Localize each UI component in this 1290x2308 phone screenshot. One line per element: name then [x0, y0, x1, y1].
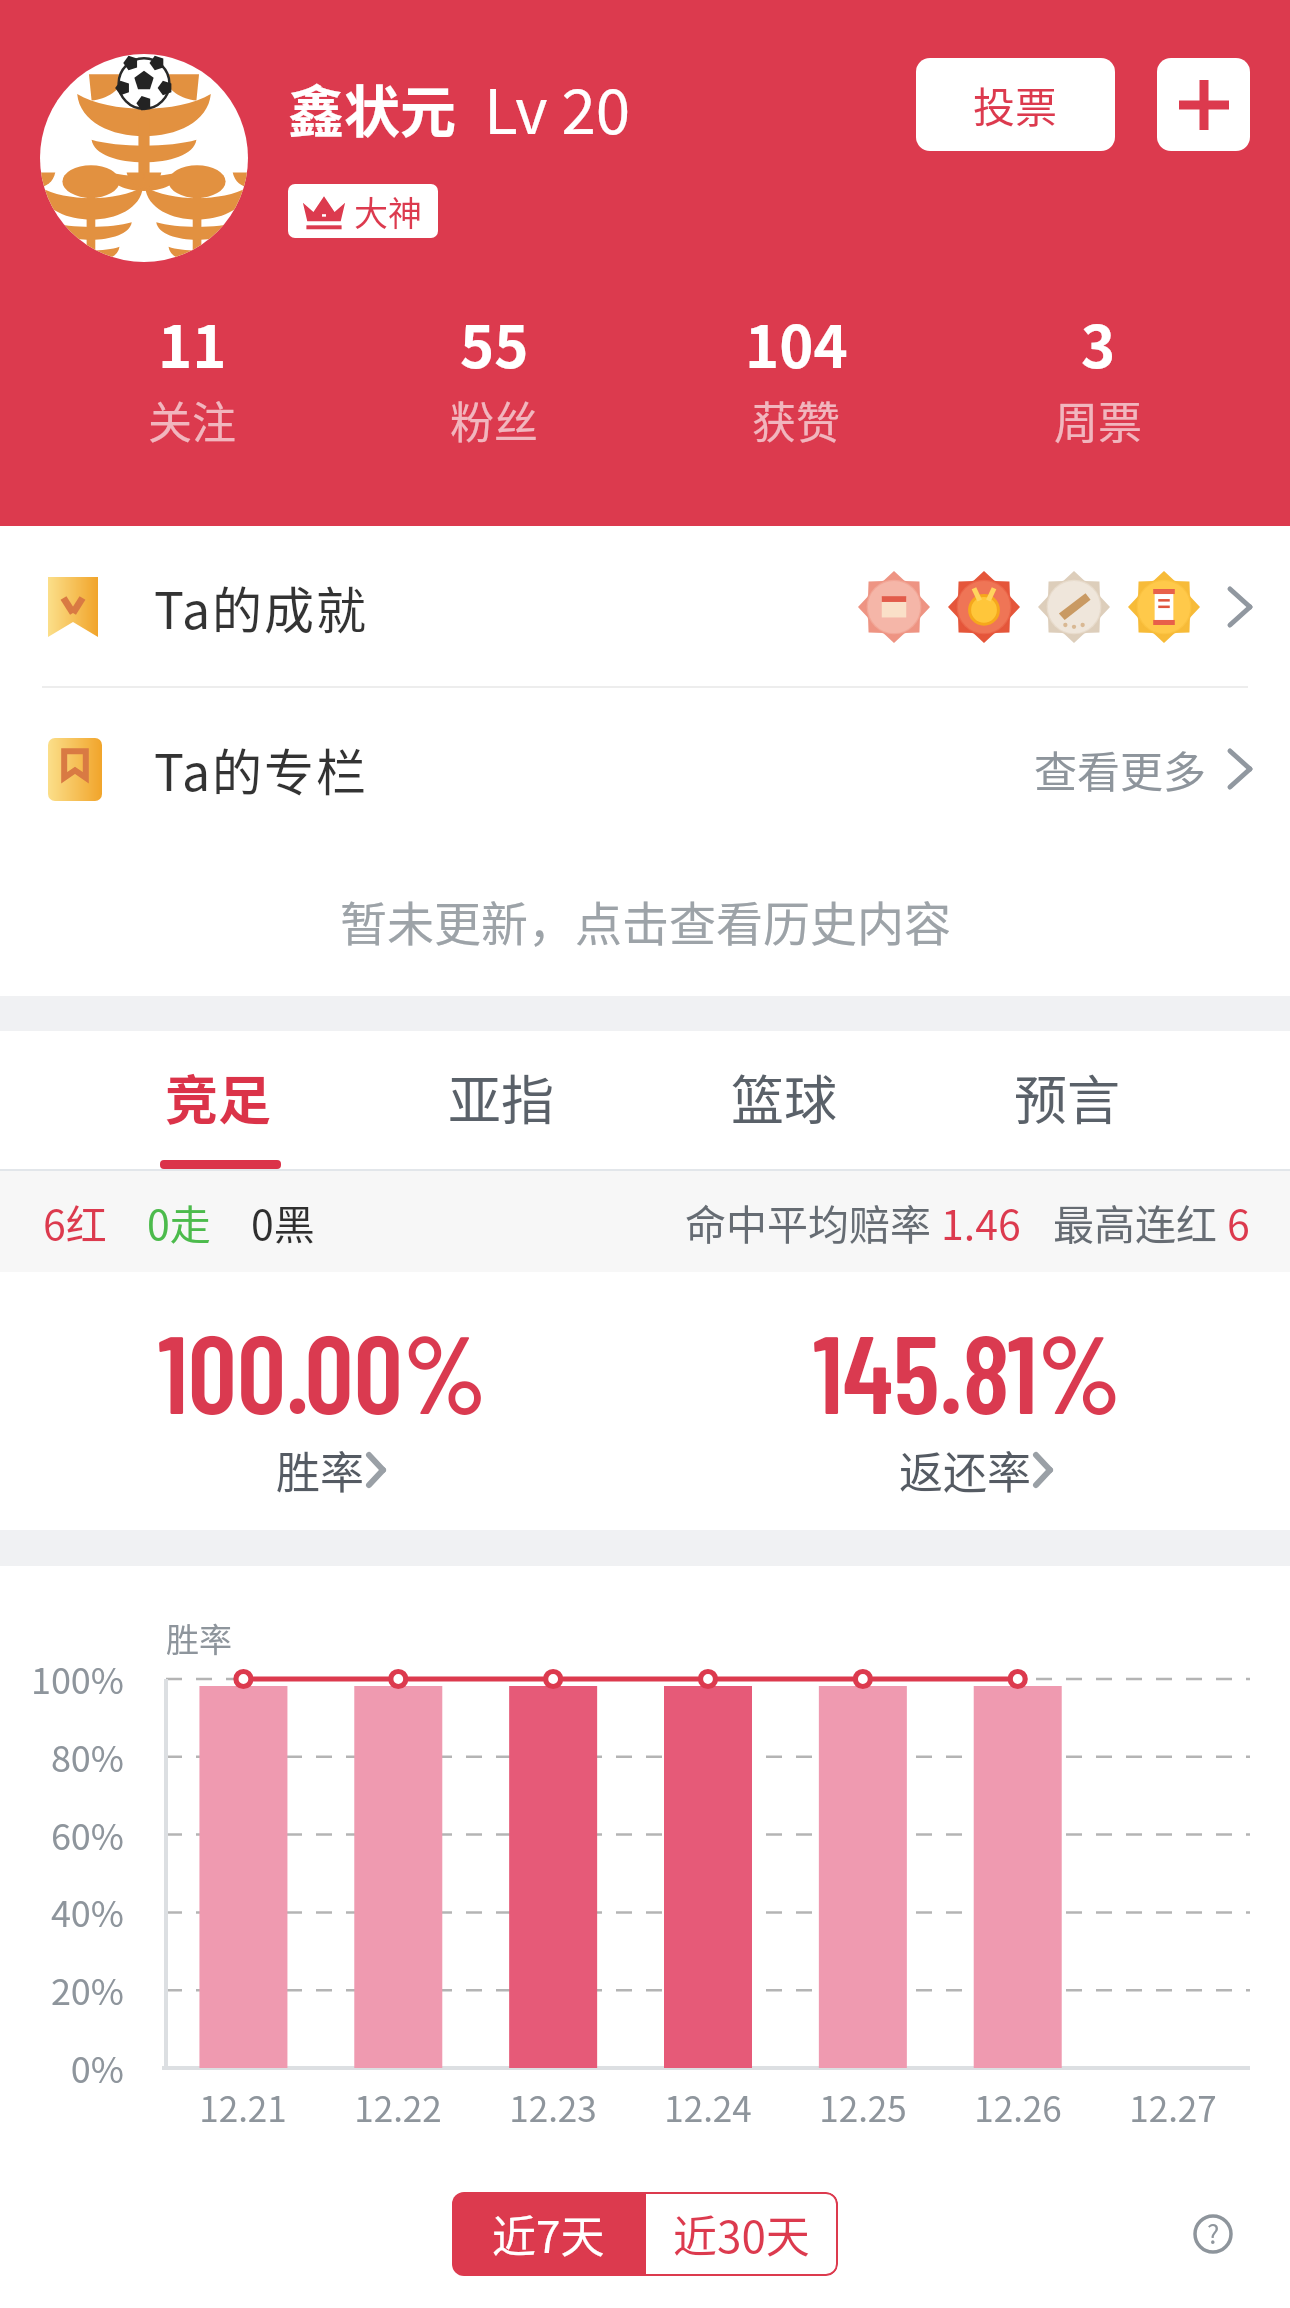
staticText: 6	[1227, 1192, 1250, 1251]
button[interactable]: 大神	[288, 184, 438, 238]
staticText: 55	[460, 301, 529, 385]
button[interactable]: 近30天	[644, 2192, 838, 2276]
staticText: 40%	[0, 1885, 124, 1937]
button[interactable]: Follow	[1157, 58, 1250, 151]
staticText: 12.27	[1093, 2081, 1253, 2132]
staticText: 12.21	[163, 2081, 323, 2132]
staticText: 投票	[973, 74, 1058, 135]
button[interactable]: Avatar	[40, 54, 248, 262]
staticText: 鑫状元	[288, 67, 456, 148]
button[interactable]: 亚指	[359, 1031, 642, 1170]
staticText: 近30天	[673, 2202, 810, 2266]
button[interactable]: 竞足	[76, 1031, 359, 1170]
staticText: 12.24	[628, 2081, 788, 2132]
staticText: 60%	[0, 1808, 124, 1860]
staticText: 80%	[0, 1730, 124, 1782]
button[interactable]: Ta的成就	[0, 526, 1290, 688]
staticText: 命中平均赔率	[685, 1192, 941, 1251]
button[interactable]: 篮球	[642, 1031, 925, 1170]
staticText: 粉丝	[450, 388, 538, 452]
staticText: 0走	[147, 1192, 211, 1251]
staticText: 20%	[0, 1963, 124, 2015]
staticText: 145.81%	[813, 1305, 1122, 1436]
button[interactable]: 100.00%	[0, 1271, 645, 1548]
staticText: 0%	[0, 2041, 124, 2093]
staticText: 最高连红	[1053, 1192, 1227, 1251]
staticText: 大神	[354, 187, 422, 236]
button[interactable]: 近7天	[452, 2192, 644, 2276]
staticText: 胜率	[166, 1614, 232, 1662]
staticText: 12.25	[783, 2081, 943, 2132]
button[interactable]: Ta的专栏	[0, 688, 1290, 850]
staticText: ?	[1207, 2214, 1220, 2252]
staticText: 胜率	[276, 1438, 364, 1502]
staticText: 1.46	[941, 1192, 1021, 1251]
staticText: 0黑	[251, 1192, 315, 1251]
staticText: 周票	[1054, 388, 1142, 452]
button[interactable]: 104	[645, 301, 947, 452]
staticText: 3	[1081, 301, 1116, 385]
staticText: 6红	[43, 1192, 107, 1251]
staticText: 100%	[0, 1652, 124, 1704]
button[interactable]: 145.81%	[645, 1271, 1290, 1548]
staticText: 竞足	[165, 1059, 271, 1136]
staticText: 亚指	[448, 1059, 554, 1136]
button[interactable]: 暂未更新，点击查看历史内容	[340, 886, 951, 954]
button[interactable]: 55	[343, 301, 645, 452]
staticText: 104	[745, 301, 848, 385]
button[interactable]: Help	[1193, 2214, 1233, 2254]
staticText: Ta的专栏	[154, 733, 369, 805]
staticText: 预言	[1014, 1059, 1120, 1136]
staticText: 篮球	[731, 1059, 837, 1136]
staticText: 12.22	[318, 2081, 478, 2132]
staticText: 100.00%	[158, 1305, 487, 1436]
staticText: 关注	[148, 388, 236, 452]
button[interactable]: 投票	[916, 58, 1115, 151]
staticText: 12.23	[473, 2081, 633, 2132]
staticText: 11	[158, 301, 227, 385]
staticText: Lv 20	[484, 62, 631, 152]
staticText: 12.26	[938, 2081, 1098, 2132]
button[interactable]: 预言	[925, 1031, 1208, 1170]
staticText: 查看更多	[1034, 738, 1206, 800]
button[interactable]: 11	[41, 301, 343, 452]
staticText: 获赞	[752, 388, 840, 452]
staticText: Ta的成就	[154, 571, 369, 643]
button[interactable]: 3	[947, 301, 1249, 452]
staticText: 近7天	[492, 2202, 605, 2266]
staticText: 返还率	[899, 1438, 1031, 1502]
